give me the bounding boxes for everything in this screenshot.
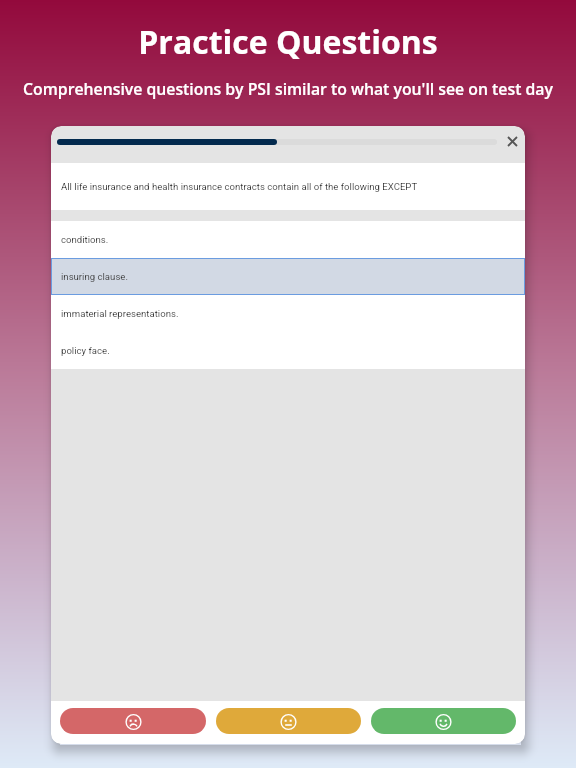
button[interactable]: conditions.: [51, 221, 525, 258]
staticText: conditions.: [61, 234, 109, 245]
button[interactable]: Hard: [60, 708, 206, 734]
button[interactable]: Close: [497, 126, 525, 156]
staticText: immaterial representations.: [61, 308, 179, 319]
staticText: insuring clause.: [61, 271, 128, 282]
staticText: policy face.: [61, 345, 110, 356]
button[interactable]: immaterial representations.: [51, 295, 525, 332]
staticText: Comprehensive questions by PSI similar t…: [0, 78, 576, 100]
button[interactable]: Easy: [371, 708, 516, 734]
button[interactable]: policy face.: [51, 332, 525, 369]
button[interactable]: insuring clause.: [51, 258, 525, 295]
button[interactable]: Medium: [216, 708, 361, 734]
staticText: Practice Questions: [0, 20, 576, 64]
staticText: All life insurance and health insurance …: [61, 181, 418, 192]
